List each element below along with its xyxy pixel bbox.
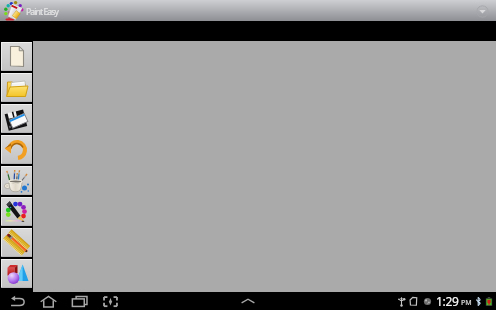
staticText: 1:29	[436, 293, 459, 309]
button[interactable]: More options	[476, 5, 489, 18]
button[interactable]: Save	[0, 103, 33, 134]
button[interactable]: Undo	[0, 134, 33, 165]
button[interactable]: Home	[33, 292, 64, 310]
button[interactable]: Brushes	[0, 165, 33, 196]
button[interactable]: Show notifications	[235, 292, 261, 310]
button[interactable]: New drawing	[0, 41, 33, 72]
staticText: PM	[461, 298, 472, 308]
button[interactable]: Colors	[0, 196, 33, 227]
staticText: Paint Easy	[26, 6, 58, 18]
button[interactable]: Back	[2, 292, 33, 310]
button[interactable]: Shapes	[0, 258, 33, 289]
button[interactable]: Recent apps	[64, 292, 95, 310]
button[interactable]: Tools	[0, 227, 33, 258]
button[interactable]: Open	[0, 72, 33, 103]
button[interactable]: Screenshot	[95, 292, 126, 310]
